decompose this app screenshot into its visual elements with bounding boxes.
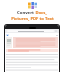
button[interactable]: Pictures, PDF to Text	[11, 16, 54, 22]
staticText: Docs,	[35, 10, 47, 16]
button[interactable]: Document thumbnail	[6, 37, 12, 48]
button[interactable]: Tab	[6, 34, 9, 36]
button[interactable]: Address bar	[7, 30, 54, 32]
staticText: Convert	[17, 10, 34, 16]
button[interactable]: App logo	[28, 2, 37, 9]
button[interactable]: Convert	[17, 10, 47, 16]
